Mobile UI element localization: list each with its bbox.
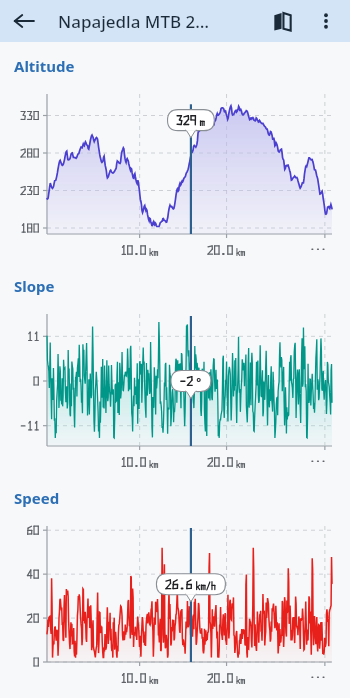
button[interactable] xyxy=(0,514,350,690)
button[interactable] xyxy=(0,302,350,474)
button[interactable]: Back xyxy=(0,0,48,42)
button[interactable]: More options xyxy=(304,0,348,42)
staticText: Speed xyxy=(14,488,60,508)
staticText: Napajedla MTB 2… xyxy=(58,10,209,33)
staticText: Altitude xyxy=(14,56,75,76)
staticText: Slope xyxy=(14,276,55,296)
button[interactable] xyxy=(0,82,350,262)
button[interactable]: Map xyxy=(260,0,304,42)
